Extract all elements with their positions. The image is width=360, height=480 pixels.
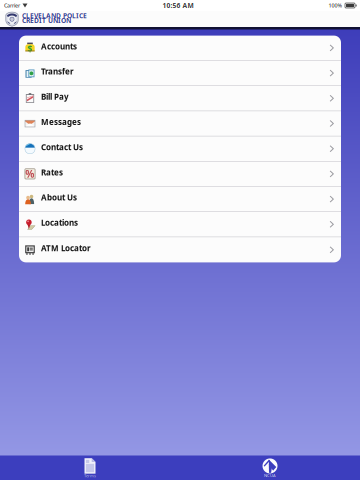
staticText: 10:56 AM (162, 1, 193, 10)
staticText: 100% (328, 2, 342, 9)
button[interactable]: Terms (60, 456, 120, 480)
staticText: Contact Us (41, 142, 83, 152)
button[interactable]: Messages (19, 111, 341, 136)
staticText: Terms (84, 473, 96, 478)
staticText: $ (27, 42, 33, 56)
staticText: CREDIT UNION (22, 16, 71, 25)
button[interactable]: Transfer (19, 61, 341, 86)
staticText: Rates (41, 167, 63, 178)
staticText: % (24, 166, 35, 182)
staticText: Locations (41, 217, 78, 228)
button[interactable]: Contact Us (19, 136, 341, 162)
staticText: Messages (41, 117, 81, 127)
staticText: Accounts (41, 41, 77, 52)
staticText: ATM Locator (41, 243, 91, 253)
staticText: NCUA (264, 473, 276, 478)
button[interactable]: Bill Pay (19, 86, 341, 111)
button[interactable]: % (19, 162, 341, 187)
button[interactable]: About Us (19, 187, 341, 212)
staticText: About Us (41, 192, 77, 203)
button[interactable]: $ (19, 36, 341, 61)
button[interactable]: ATM Locator (19, 237, 341, 262)
staticText: CLEVELAND POLICE (22, 11, 87, 20)
staticText: Transfer (41, 66, 74, 77)
staticText: Carrier (4, 2, 20, 9)
button[interactable]: NCUA (240, 456, 300, 480)
staticText: Bill Pay (41, 91, 69, 102)
button[interactable]: Locations (19, 212, 341, 237)
